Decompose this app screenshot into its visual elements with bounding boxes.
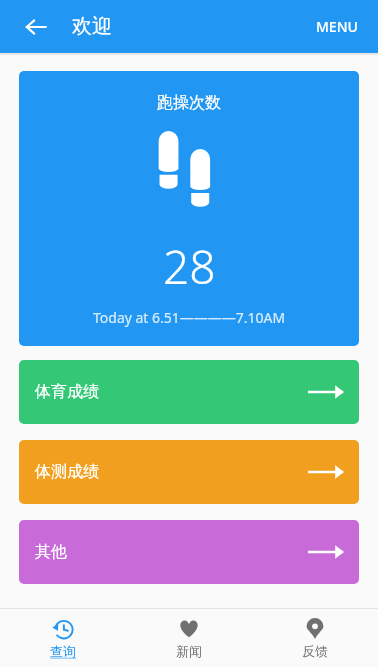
other: Footsteps: [156, 131, 222, 213]
button[interactable]: MENU: [304, 7, 370, 46]
staticText: 查询: [50, 643, 76, 659]
staticText: MENU: [316, 17, 358, 36]
staticText: 其他: [35, 542, 67, 562]
staticText: 反馈: [302, 643, 328, 659]
staticText: 新闻: [176, 643, 202, 659]
button[interactable]: 反馈: [252, 609, 378, 667]
button[interactable]: 其他: [19, 520, 359, 584]
staticText: 欢迎: [72, 14, 112, 39]
staticText: 28: [163, 235, 216, 298]
button[interactable]: 体育成绩: [19, 360, 359, 424]
staticText: 跑操次数: [157, 93, 221, 113]
button[interactable]: 体测成绩: [19, 440, 359, 504]
button[interactable]: 新闻: [126, 609, 252, 667]
staticText: Today at 6.51————7.10AM: [93, 308, 286, 327]
button[interactable]: 查询: [0, 609, 126, 667]
button[interactable]: 跑操次数: [19, 71, 359, 346]
staticText: 体测成绩: [35, 462, 99, 482]
button[interactable]: Back: [14, 5, 58, 49]
staticText: 体育成绩: [35, 382, 99, 402]
